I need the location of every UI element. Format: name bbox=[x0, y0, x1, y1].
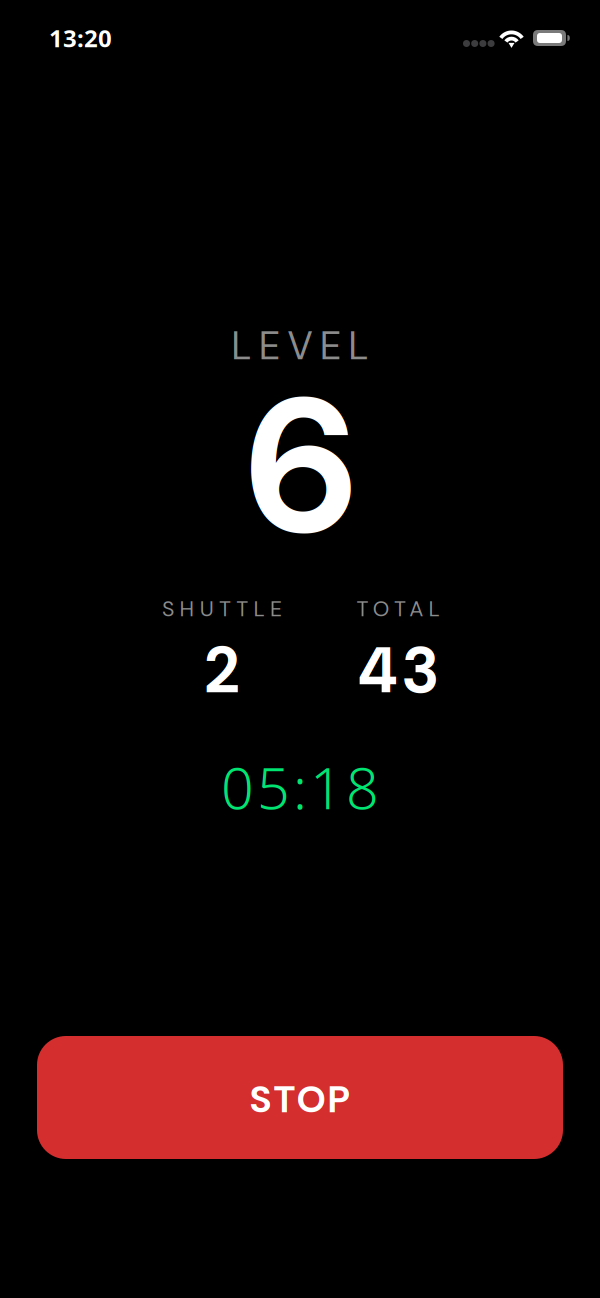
staticText: 6 bbox=[244, 345, 355, 590]
button[interactable]: STOP bbox=[37, 1036, 563, 1159]
staticText: 05:18 bbox=[221, 749, 379, 825]
staticText: SHUTTLE bbox=[162, 595, 282, 623]
staticText: 2 bbox=[205, 629, 239, 712]
staticText: STOP bbox=[249, 1075, 350, 1124]
staticText: TOTAL bbox=[356, 595, 440, 623]
staticText: LEVEL bbox=[231, 321, 368, 371]
staticText: 13:20 bbox=[49, 22, 112, 54]
staticText: 43 bbox=[358, 629, 438, 712]
